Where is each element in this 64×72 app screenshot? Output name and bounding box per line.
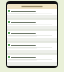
button[interactable]: Item icon [7,43,57,54]
button[interactable]: Item icon [7,55,57,66]
button[interactable]: Item icon [7,9,57,19]
button[interactable]: Item icon [7,20,57,30]
button[interactable]: Item icon [7,31,57,42]
button[interactable]: App header [7,4,57,9]
